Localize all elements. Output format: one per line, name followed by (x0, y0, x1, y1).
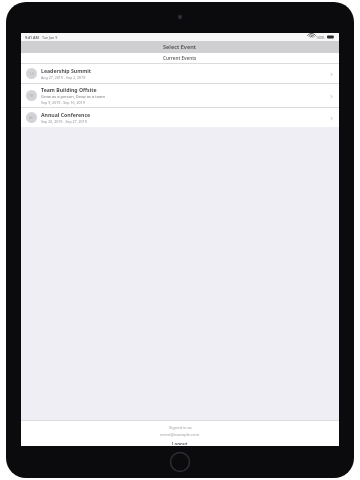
staticText: AC (29, 115, 34, 120)
staticText: TB (29, 93, 34, 98)
staticText: event@example.com (160, 432, 200, 437)
button[interactable]: Logout (166, 440, 194, 446)
staticText: Aug 27, 2019 - Sep 2, 2019 (41, 75, 86, 80)
staticText: Grow as a person, Grow as a team (41, 94, 105, 99)
staticText: Sep 20, 2019 - Sep 27, 2019 (41, 119, 87, 124)
staticText: Select Event (163, 43, 197, 51)
staticText: Annual Conference (41, 111, 91, 118)
other: Open event (327, 70, 335, 78)
button[interactable]: LS (21, 64, 339, 83)
staticText: Leadership Summit (41, 67, 92, 74)
button[interactable]: TB (21, 84, 339, 107)
staticText: Team Building Offsite (41, 86, 97, 93)
staticText: Signed in as (169, 425, 192, 430)
staticText: LS (30, 71, 34, 76)
other: Open event (327, 92, 335, 100)
staticText: 100% (316, 35, 325, 40)
staticText: Logout (172, 441, 188, 445)
staticText: Current Events (163, 55, 197, 61)
other: Open event (327, 114, 335, 122)
staticText: Sep 9, 2019 - Sep 16, 2019 (41, 100, 85, 105)
staticText: Tue Jan 9 (42, 35, 58, 40)
button[interactable]: AC (21, 108, 339, 127)
staticText: 9:41 AM (25, 35, 39, 40)
